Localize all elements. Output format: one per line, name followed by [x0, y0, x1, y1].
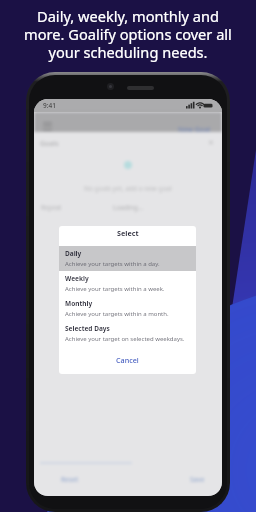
staticText: 9:41 [43, 101, 56, 110]
staticText: Reset [61, 475, 79, 484]
staticText: New Goal [178, 125, 211, 135]
staticText: Selected Days [65, 324, 110, 333]
staticText: Cancel [116, 355, 139, 365]
staticText: Weekly [65, 274, 89, 283]
staticText: Repeat [41, 203, 62, 211]
button[interactable]: Daily [59, 246, 196, 271]
staticText: Select [117, 228, 139, 238]
staticText: Achieve your targets within a month. [65, 310, 169, 318]
staticText: Achieve your targets within a day. [65, 260, 160, 268]
button[interactable]: Monthly [59, 296, 196, 321]
staticText: Achieve your target on selected weekdays… [65, 335, 185, 343]
staticText: Achieve your targets within a week. [65, 285, 165, 293]
staticText: No goals yet, add a new goal [84, 184, 172, 193]
staticText: ✕ [208, 139, 214, 147]
staticText: Loading… [113, 203, 143, 212]
staticText: Save [190, 475, 205, 484]
staticText: Goals [40, 139, 59, 149]
button[interactable]: Cancel [59, 346, 196, 374]
staticText: Monthly [65, 299, 93, 308]
button[interactable]: Weekly [59, 271, 196, 296]
staticText: Daily [65, 249, 82, 258]
button[interactable]: Selected Days [59, 321, 196, 346]
staticText: Daily, weekly, monthly and more. Goalify… [24, 6, 232, 63]
